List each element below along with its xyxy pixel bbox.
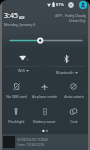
staticText: SCHEDULED TODAY <box>17 137 49 142</box>
staticText: Cast <box>70 119 78 124</box>
button[interactable]: Auto-rotate <box>59 76 88 102</box>
button[interactable]: Settings <box>67 1 75 9</box>
staticText: Battery saver <box>33 119 56 124</box>
staticText: Union City <box>69 18 86 23</box>
staticText: Flashlight <box>8 119 25 124</box>
staticText: 81% <box>56 2 64 7</box>
button[interactable]: Cast <box>59 101 88 127</box>
button[interactable]: User profile <box>78 0 87 9</box>
button[interactable]: Flashlight <box>2 101 30 127</box>
button[interactable]: Wifi <box>2 47 45 75</box>
staticText: Airplane mode <box>32 94 57 99</box>
button[interactable]: SCHEDULED TODAY <box>2 134 88 150</box>
button[interactable]: Airplane mode <box>30 76 59 102</box>
button[interactable]: Bluetooth <box>45 47 88 75</box>
staticText: No SIM card <box>6 94 27 99</box>
button[interactable]: No SIM card <box>2 76 30 102</box>
button[interactable]: Page indicator <box>2 126 88 134</box>
button[interactable]: Brightness <box>2 0 88 150</box>
staticText: 46°F - Partly Cloudy <box>55 13 86 18</box>
staticText: Auto-rotate <box>64 94 84 99</box>
staticText: Bluetooth <box>56 70 74 75</box>
staticText: Wifi <box>18 68 25 73</box>
button[interactable]: Battery saver <box>30 101 59 127</box>
staticText: 3:45 <box>4 11 18 21</box>
staticText: From 12/30/2018 <box>17 142 45 147</box>
staticText: AM <box>19 15 25 20</box>
staticText: Monday, January 6 <box>4 22 36 27</box>
